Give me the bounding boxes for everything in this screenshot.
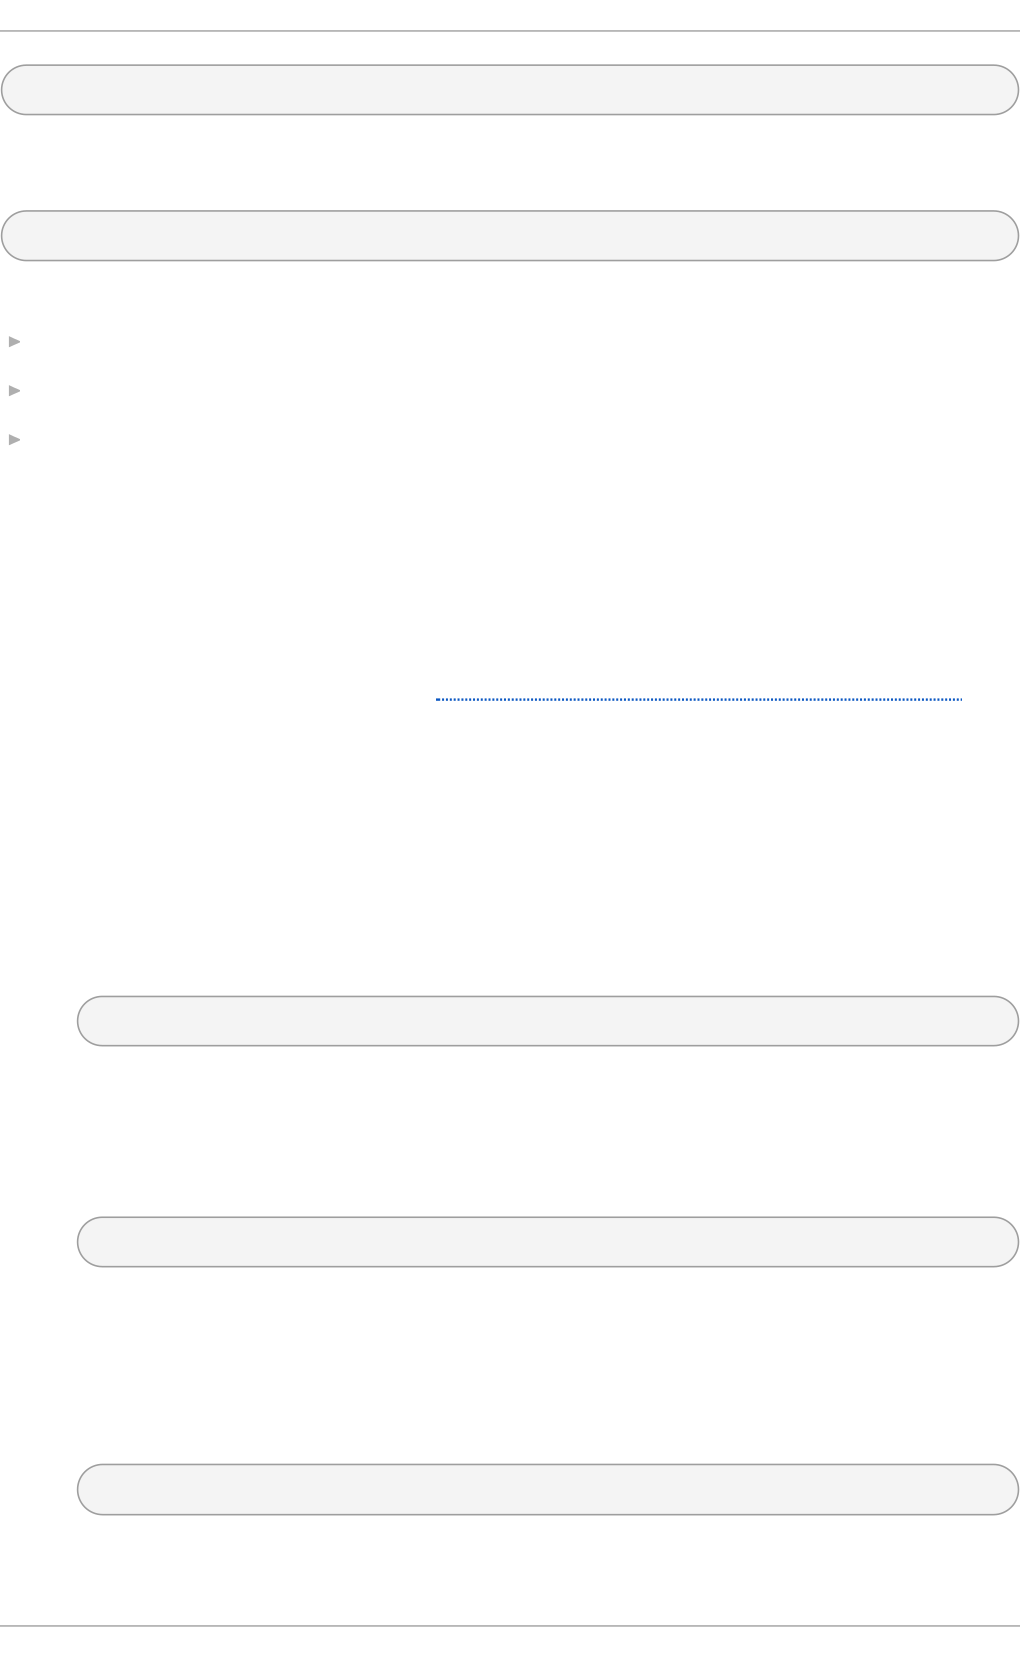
button[interactable]: Text field 1 bbox=[2, 65, 1018, 115]
button[interactable]: Text field 5 bbox=[78, 1464, 1018, 1515]
button[interactable]: Text field 4 bbox=[78, 1217, 1018, 1267]
button[interactable]: Text field 2 bbox=[2, 211, 1018, 260]
button[interactable]: Link bbox=[436, 698, 962, 701]
button[interactable]: Text field 3 bbox=[78, 996, 1018, 1046]
